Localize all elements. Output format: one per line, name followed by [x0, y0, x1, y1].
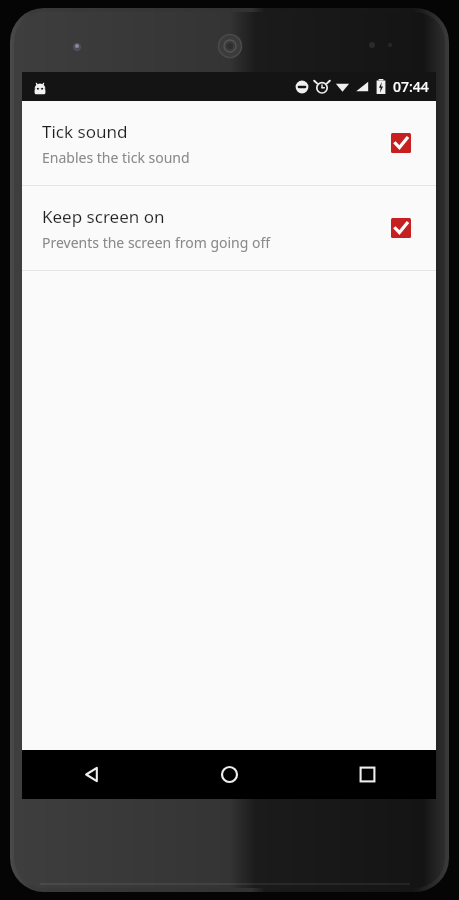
staticText: Keep screen on: [42, 205, 165, 228]
button[interactable]: Tick sound: [22, 101, 436, 185]
button[interactable]: Home: [160, 750, 298, 799]
button[interactable]: Keep screen on: [384, 211, 418, 245]
button[interactable]: Tick sound: [384, 126, 418, 160]
staticText: Tick sound: [42, 120, 128, 143]
staticText: Enables the tick sound: [42, 148, 190, 167]
button[interactable]: Back: [22, 750, 160, 799]
button[interactable]: Keep screen on: [22, 186, 436, 270]
staticText: 07:44: [393, 77, 429, 96]
staticText: Prevents the screen from going off: [42, 233, 271, 252]
button[interactable]: Recent apps: [298, 750, 436, 799]
